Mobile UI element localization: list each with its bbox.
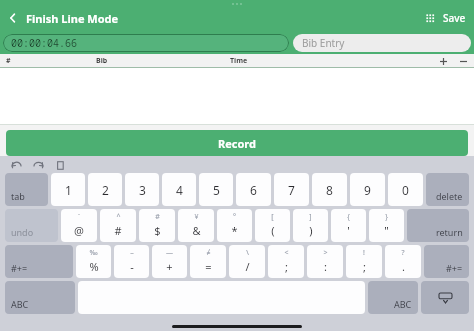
button[interactable]: ^ <box>100 209 136 242</box>
staticText: . <box>402 259 405 274</box>
staticText: $ <box>154 223 161 238</box>
staticText: # <box>6 56 11 66</box>
staticText: } <box>385 212 388 222</box>
staticText: Finish Line Mode <box>26 11 119 26</box>
button[interactable]: return <box>407 209 469 242</box>
staticText: Bib Entry <box>302 36 345 50</box>
staticText: * <box>231 223 238 238</box>
staticText: & <box>192 223 201 238</box>
button[interactable]: tab <box>5 173 48 206</box>
staticText: ' <box>347 223 350 238</box>
staticText: 6 <box>250 182 257 198</box>
staticText: < <box>284 248 289 258</box>
staticText: 3 <box>139 182 146 198</box>
staticText: 00:00:04.66 <box>11 36 77 50</box>
button[interactable]: 5 <box>199 173 233 206</box>
staticText: { <box>347 212 350 222</box>
staticText: 8 <box>326 182 333 198</box>
staticText: ( <box>271 223 275 238</box>
staticText: ; <box>363 259 366 274</box>
button[interactable]: Remove <box>458 56 468 66</box>
button[interactable]: ABC <box>5 281 75 314</box>
button[interactable]: } <box>369 209 404 242</box>
button[interactable]: — <box>152 245 187 278</box>
staticText: 2 <box>102 182 109 198</box>
staticText: ! <box>363 248 365 258</box>
button[interactable]: Back <box>0 8 26 28</box>
button[interactable]: > <box>307 245 343 278</box>
button[interactable]: Record <box>6 130 468 156</box>
button[interactable]: 6 <box>236 173 271 206</box>
staticText: = <box>205 259 212 274</box>
staticText: return <box>436 226 463 238</box>
staticText: ? <box>401 248 405 258</box>
staticText: ) <box>309 223 313 238</box>
staticText: ≠ <box>206 248 211 258</box>
button[interactable]: 0 <box>388 173 423 206</box>
button[interactable]: 1 <box>51 173 85 206</box>
staticText: – <box>130 248 134 258</box>
staticText: Bib <box>96 56 108 66</box>
staticText: 0 <box>402 182 409 198</box>
staticText: delete <box>436 190 463 202</box>
staticText: #+= <box>11 262 28 274</box>
staticText: 4 <box>176 182 183 198</box>
button[interactable]: < <box>268 245 304 278</box>
button[interactable]: 3 <box>125 173 159 206</box>
staticText: ‰ <box>89 248 98 258</box>
staticText: tab <box>11 190 25 202</box>
staticText: 5 <box>213 182 220 198</box>
button[interactable]: Grid <box>419 8 441 28</box>
button[interactable]: Save <box>441 11 474 25</box>
staticText: undo <box>11 226 34 238</box>
button[interactable]: 00:00:04.66 <box>3 34 289 52</box>
button[interactable]: undo <box>5 209 58 242</box>
button[interactable]: 2 <box>88 173 122 206</box>
button[interactable]: \ <box>229 245 265 278</box>
staticText: Save <box>443 11 466 25</box>
staticText: #+= <box>446 262 463 274</box>
staticText: # <box>114 223 122 238</box>
button[interactable]: ABC <box>368 281 418 314</box>
button[interactable]: ? <box>385 245 421 278</box>
staticText: ° <box>233 212 236 222</box>
button[interactable]: 9 <box>350 173 385 206</box>
button[interactable]: 8 <box>312 173 347 206</box>
button[interactable]: 4 <box>162 173 196 206</box>
button[interactable]: Add <box>438 56 448 66</box>
button[interactable]: { <box>331 209 366 242</box>
button[interactable]: Redo <box>30 157 46 173</box>
button[interactable]: – <box>114 245 149 278</box>
staticText: @ <box>74 223 84 238</box>
staticText: 9 <box>364 182 371 198</box>
button[interactable]: ! <box>346 245 382 278</box>
button[interactable]: [ <box>255 209 290 242</box>
staticText: + <box>166 259 173 274</box>
button[interactable]: ¥ <box>178 209 214 242</box>
button[interactable]: delete <box>426 173 469 206</box>
button[interactable]: Hide keyboard <box>421 281 469 314</box>
button[interactable]: ‰ <box>76 245 111 278</box>
button[interactable]: # <box>139 209 175 242</box>
staticText: ^ <box>116 212 121 222</box>
button[interactable]: #+= <box>424 245 469 278</box>
staticText: ] <box>309 212 312 222</box>
button[interactable]: Bib Entry <box>293 34 471 52</box>
staticText: 7 <box>288 182 295 198</box>
button[interactable]: ° <box>217 209 252 242</box>
staticText: # <box>155 212 160 222</box>
button[interactable]: ] <box>293 209 328 242</box>
button[interactable]: #+= <box>5 245 73 278</box>
button[interactable]: Undo <box>8 157 24 173</box>
button[interactable]: ≠ <box>190 245 226 278</box>
staticText: - <box>130 259 134 274</box>
button[interactable]: Paste <box>52 157 68 173</box>
staticText: : <box>324 259 327 274</box>
staticText: % <box>89 259 99 274</box>
button[interactable]: 7 <box>274 173 309 206</box>
staticText: ; <box>285 259 288 274</box>
button[interactable]: ` <box>61 209 97 242</box>
staticText: \ <box>246 248 249 258</box>
staticText: Record <box>218 136 256 151</box>
